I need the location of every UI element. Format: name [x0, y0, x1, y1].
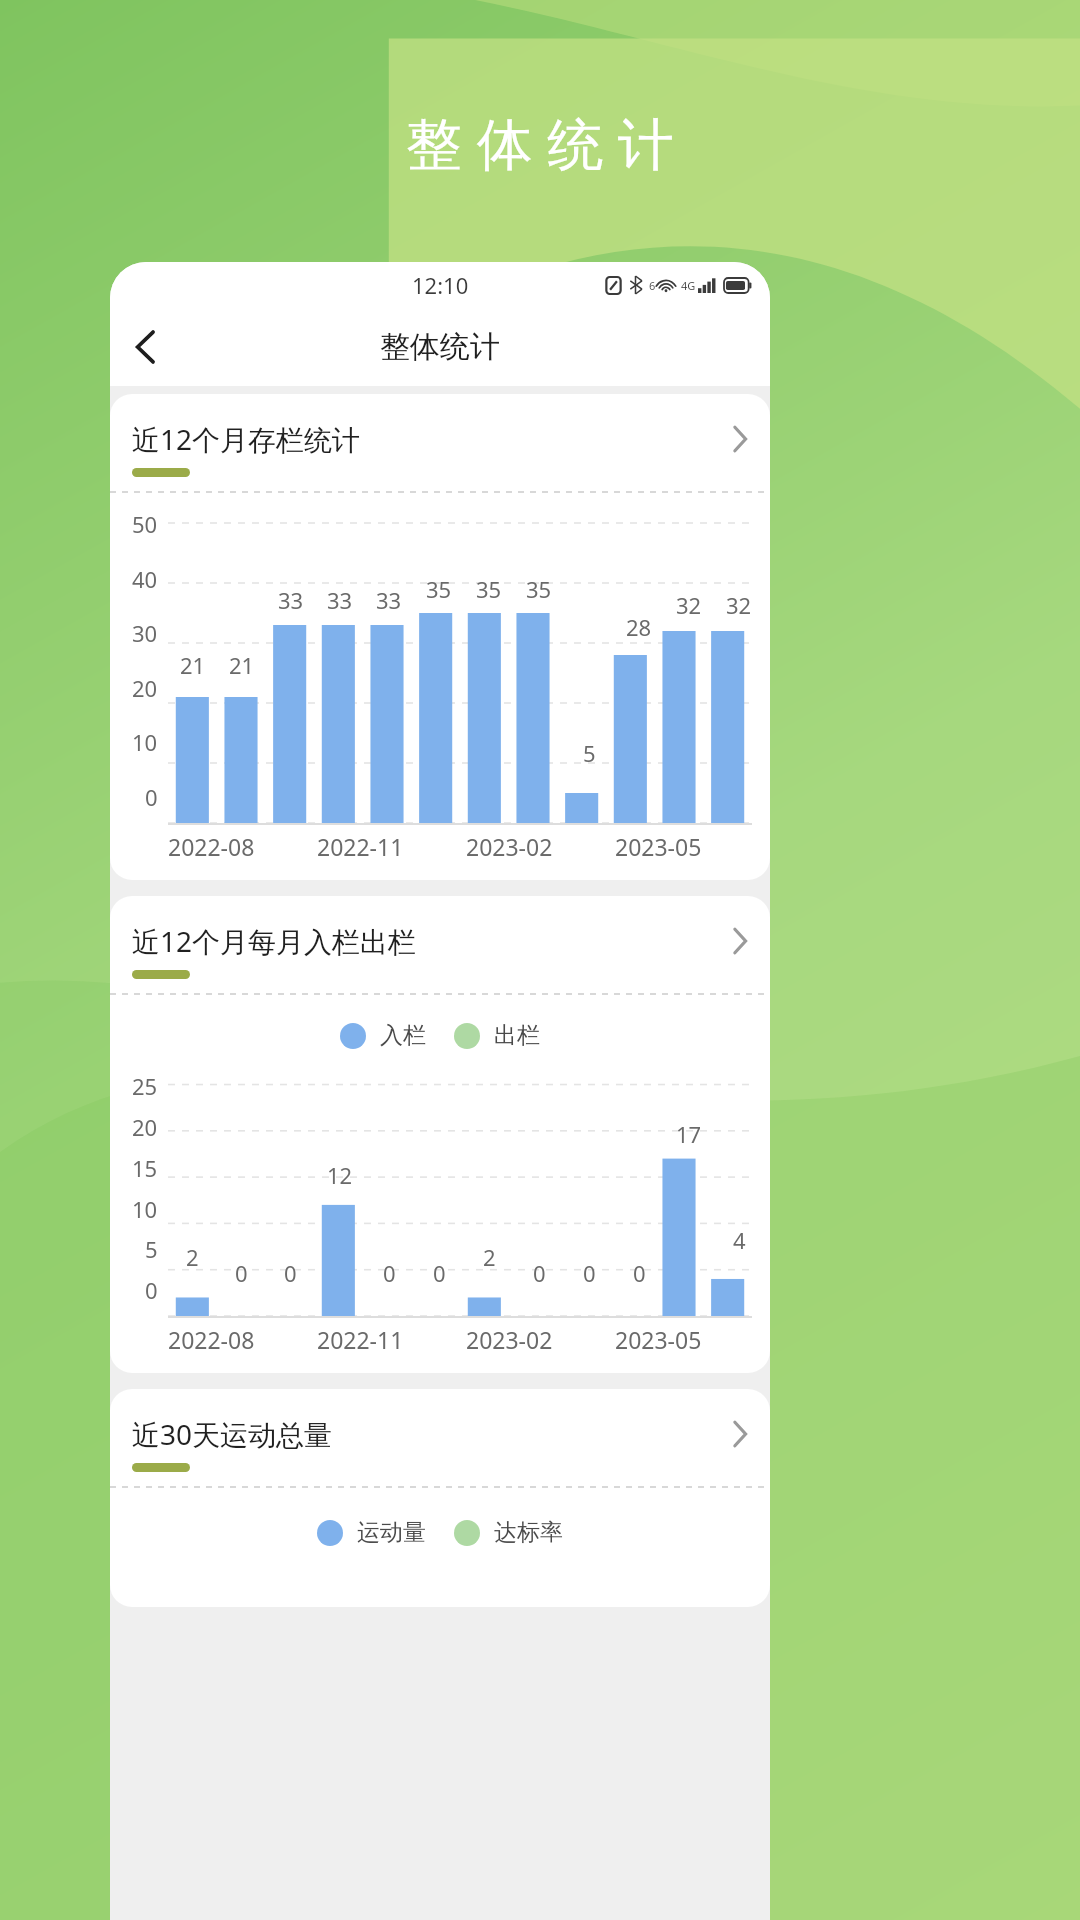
staticText: 0: [583, 1258, 596, 1288]
staticText: 12:10: [412, 270, 469, 300]
staticText: 20: [132, 673, 158, 703]
staticText: 12: [327, 1160, 353, 1190]
staticText: 28: [626, 612, 652, 642]
staticText: 50: [132, 509, 158, 539]
staticText: 40: [132, 564, 158, 594]
staticText: 运动量: [357, 1518, 426, 1547]
staticText: 达标率: [494, 1518, 563, 1547]
staticText: 21: [229, 650, 255, 680]
staticText: 35: [526, 574, 552, 604]
staticText: 入栏: [380, 1021, 426, 1050]
staticText: 近30天运动总量: [132, 1415, 333, 1453]
staticText: 整体统计: [380, 328, 500, 366]
staticText: 25: [132, 1071, 158, 1101]
staticText: 2022-08: [168, 831, 255, 862]
staticText: 33: [376, 585, 402, 615]
staticText: 0: [433, 1258, 446, 1288]
staticText: 17: [676, 1119, 702, 1149]
staticText: 33: [278, 585, 304, 615]
button[interactable]: Back: [118, 319, 174, 375]
button[interactable]: 近12个月存栏统计: [110, 394, 770, 493]
staticText: 32: [676, 590, 702, 620]
staticText: 10: [132, 1194, 158, 1224]
staticText: 0: [383, 1258, 396, 1288]
staticText: 近12个月每月入栏出栏: [132, 922, 417, 960]
staticText: 10: [132, 727, 158, 757]
staticText: 20: [132, 1112, 158, 1142]
staticText: 15: [132, 1153, 158, 1183]
staticText: 2022-11: [317, 1324, 404, 1355]
staticText: 33: [327, 585, 353, 615]
staticText: 近12个月存栏统计: [132, 420, 361, 458]
staticText: 5: [583, 738, 596, 768]
button[interactable]: 近30天运动总量: [110, 1389, 770, 1488]
staticText: 2023-02: [466, 831, 553, 862]
staticText: 2023-05: [615, 1324, 702, 1355]
staticText: 0: [145, 782, 158, 812]
staticText: 6: [649, 278, 656, 293]
staticText: 0: [145, 1275, 158, 1305]
staticText: 21: [180, 650, 206, 680]
staticText: 0: [633, 1258, 646, 1288]
staticText: 0: [284, 1258, 297, 1288]
staticText: 2: [483, 1242, 496, 1272]
staticText: 2023-05: [615, 831, 702, 862]
staticText: 35: [426, 574, 452, 604]
staticText: 2022-11: [317, 831, 404, 862]
staticText: 30: [132, 618, 158, 648]
staticText: 2022-08: [168, 1324, 255, 1355]
staticText: 2: [186, 1242, 199, 1272]
button[interactable]: 近12个月每月入栏出栏: [110, 896, 770, 995]
staticText: 4: [733, 1225, 746, 1255]
staticText: 32: [726, 590, 752, 620]
staticText: 5: [145, 1234, 158, 1264]
staticText: 0: [533, 1258, 546, 1288]
staticText: 35: [476, 574, 502, 604]
staticText: 0: [235, 1258, 248, 1288]
staticText: 整 体 统 计: [0, 104, 1080, 180]
staticText: 出栏: [494, 1021, 540, 1050]
staticText: 4G: [681, 278, 696, 293]
staticText: 2023-02: [466, 1324, 553, 1355]
